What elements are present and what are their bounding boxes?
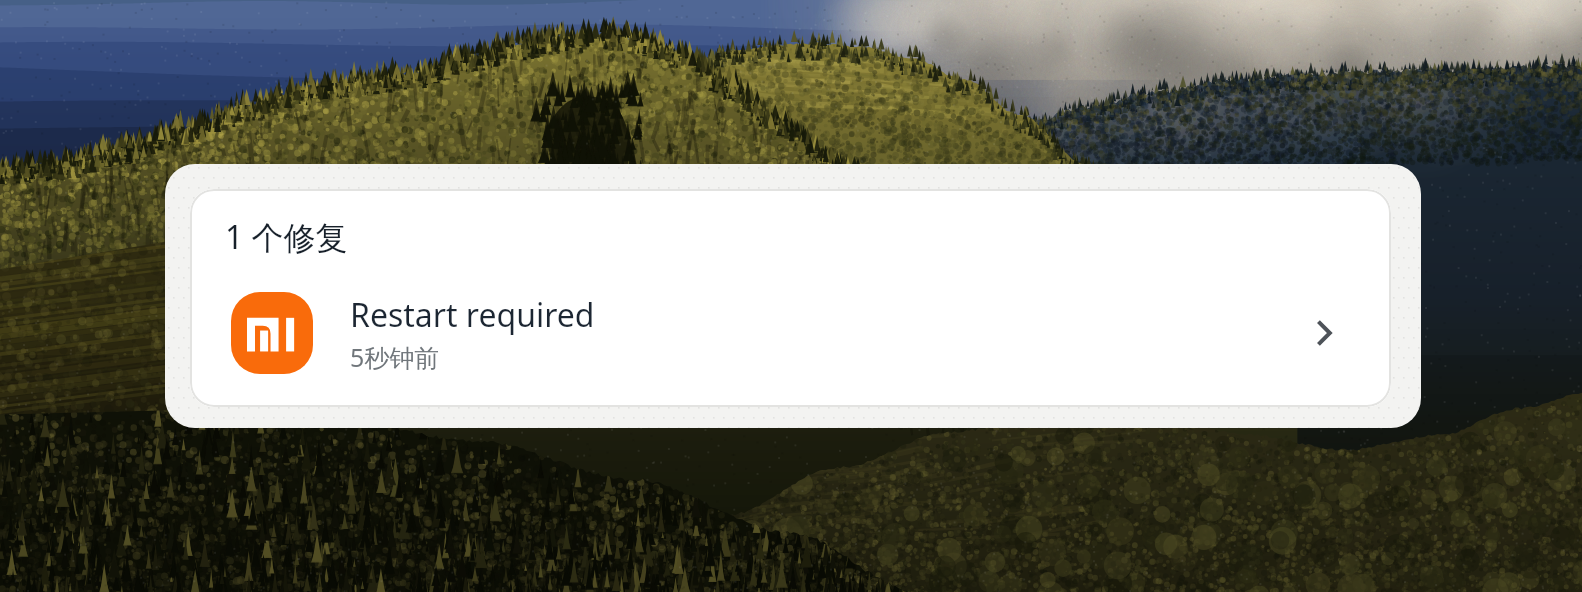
button[interactable]: Open details — [1295, 305, 1351, 361]
staticText: 5秒钟前 — [350, 340, 440, 374]
button[interactable]: 1 个修复 — [190, 189, 1391, 407]
staticText: Restart required — [350, 293, 595, 337]
staticText: 1 个修复 — [225, 215, 348, 259]
